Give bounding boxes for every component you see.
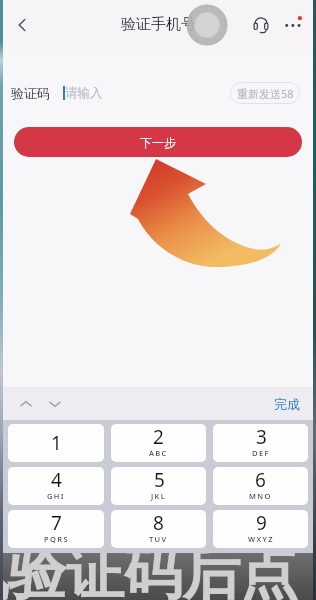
button[interactable]: 8 — [111, 510, 206, 548]
button[interactable]: 完成 — [268, 392, 306, 416]
staticText: 9 — [256, 510, 267, 536]
button[interactable]: 4 — [8, 467, 104, 505]
button[interactable]: 下一步 — [14, 127, 302, 157]
button[interactable]: 9 — [213, 510, 308, 548]
staticText: 7 — [51, 510, 62, 536]
button[interactable]: 1 — [8, 424, 104, 462]
button[interactable]: 重新发送58 — [230, 82, 300, 104]
staticText: 5 — [154, 467, 165, 493]
staticText: MNO — [249, 491, 272, 501]
button[interactable]: Customer service — [247, 11, 274, 38]
staticText: TUV — [149, 534, 168, 544]
staticText: 6 — [255, 467, 266, 493]
staticText: 机验证码后点 — [0, 553, 298, 600]
staticText: ABC — [149, 448, 168, 458]
button[interactable]: 5 — [111, 467, 206, 505]
staticText: JKL — [151, 491, 167, 501]
staticText: WXYZ — [248, 534, 274, 544]
staticText: 8 — [153, 510, 164, 536]
button[interactable]: Back — [8, 11, 36, 39]
staticText: PQRS — [44, 534, 69, 544]
staticText: 完成 — [274, 396, 300, 412]
staticText: 2 — [153, 424, 164, 450]
staticText: GHI — [47, 491, 65, 501]
staticText: 4 — [51, 467, 62, 493]
staticText: 重新发送58 — [237, 86, 294, 101]
button[interactable]: 6 — [213, 467, 308, 505]
button[interactable]: 7 — [8, 510, 104, 548]
button[interactable]: More options — [278, 11, 306, 39]
button[interactable]: Previous field — [13, 391, 39, 417]
staticText: 请输入 — [65, 85, 103, 101]
staticText: 下一步 — [140, 135, 176, 150]
staticText: 3 — [256, 424, 267, 450]
staticText: 验证手机号 — [121, 15, 196, 34]
button[interactable]: Next field — [42, 391, 68, 417]
button[interactable]: 3 — [213, 424, 308, 462]
staticText: 验证码 — [11, 85, 50, 101]
staticText: 1 — [51, 430, 62, 456]
staticText: DEF — [252, 448, 270, 458]
button[interactable]: 2 — [111, 424, 206, 462]
